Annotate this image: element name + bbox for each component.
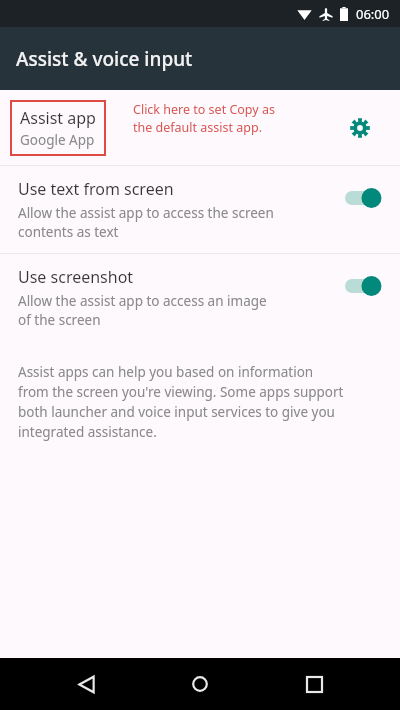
button[interactable]: Use text from screen	[0, 166, 400, 253]
staticText: 06:00	[356, 5, 390, 23]
staticText: Use screenshot	[18, 266, 134, 288]
staticText: Assist & voice input	[16, 46, 193, 72]
staticText: from the screen you're viewing. Some app…	[18, 383, 344, 401]
staticText: the default assist app.	[133, 119, 263, 136]
button[interactable]: Use text from screen	[340, 180, 388, 216]
staticText: Allow the assist app to access an image	[18, 292, 267, 310]
button[interactable]: Use screenshot	[340, 268, 388, 304]
button[interactable]: Assist app settings	[340, 108, 380, 148]
staticText: Google App	[20, 131, 95, 149]
button[interactable]: Home	[176, 660, 224, 708]
button[interactable]: Recent apps	[290, 660, 338, 708]
button[interactable]: Assist app	[0, 90, 400, 165]
button[interactable]: Back	[62, 660, 110, 708]
staticText: integrated assistance.	[18, 423, 157, 441]
staticText: Assist apps can help you based on inform…	[18, 363, 314, 381]
staticText: Click here to set Copy as	[133, 101, 275, 118]
staticText: contents as text	[18, 223, 119, 241]
button[interactable]: Use screenshot	[0, 254, 400, 341]
staticText: both launcher and voice input services t…	[18, 403, 335, 421]
staticText: Allow the assist app to access the scree…	[18, 204, 274, 222]
staticText: Use text from screen	[18, 178, 174, 200]
staticText: Assist app	[20, 107, 96, 129]
staticText: of the screen	[18, 311, 101, 329]
